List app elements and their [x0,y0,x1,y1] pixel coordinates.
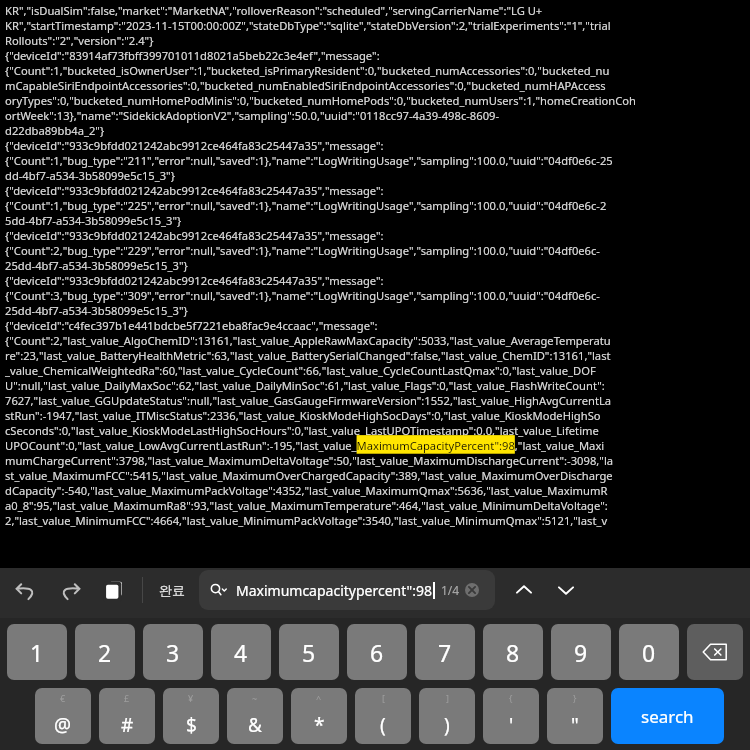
staticText: 25dd-4bf7-a534-3b58099e5c15_3"} [5,303,748,318]
button[interactable]: 완료 [149,568,195,612]
staticText: { [509,692,513,704]
staticText: 25dd-4bf7-a534-3b58099e5c15_3"} [5,258,748,273]
staticText: 7627,"last_value_GGUpdateStatus":null,"l… [5,393,748,408]
staticText: {"Count":1,"bug_type":"211","error":null… [5,153,748,168]
staticText: } [573,692,577,704]
button[interactable]: [ [355,688,411,744]
staticText: Rollouts":"2","version":"2.4"} [5,33,748,48]
staticText: {"deviceId":"933c9bfdd021242abc9912ce464… [5,273,748,288]
staticText: {"Count":3,"bug_type":"309","error":null… [5,288,748,303]
staticText: stRun":-1947,"last_value_ITMiscStatus":2… [5,408,748,423]
staticText: 9 [574,637,588,668]
button[interactable]: € [35,688,91,744]
button[interactable]: search [611,688,724,744]
staticText: mCapableSiriEndpointAccessories":0,"buck… [5,78,748,93]
staticText: d22dba89bb4a_2"} [5,123,748,138]
button[interactable]: Previous match [503,569,545,611]
button[interactable]: ^ [291,688,347,744]
staticText: ) [444,712,450,738]
button[interactable]: Backspace [687,624,743,680]
staticText: 2,"last_value_MinimumFCC":4664,"last_val… [5,513,748,528]
button[interactable]: 3 [143,624,203,680]
staticText: ( [380,712,386,738]
staticText: _value_ChemicalWeightedRa":60,"last_valu… [5,363,748,378]
staticText: ' [509,712,514,738]
staticText: {"Count":1,"bucketed_isOwnerUser":1,"buc… [5,63,748,78]
button[interactable]: { [483,688,539,744]
button[interactable]: Maximumcapacitypercent":98 [199,570,495,610]
staticText: 1 [30,637,44,668]
button[interactable]: ] [419,688,475,744]
button[interactable]: 1 [7,624,67,680]
staticText: {"deviceId":"933c9bfdd021242abc9912ce464… [5,138,748,153]
staticText: £ [124,692,130,704]
button[interactable]: Redo [48,568,92,612]
button[interactable]: 0 [619,624,679,680]
staticText: cSeconds":0,"last_value_KioskModeLastHig… [5,423,748,438]
staticText: {"deviceId":"933c9bfdd021242abc9912ce464… [5,183,748,198]
staticText: € [60,692,66,704]
staticText: $ [186,712,197,738]
staticText: ~ [252,692,258,704]
staticText: mumChargeCurrent":3798,"last_value_Maxim… [5,453,748,468]
staticText: 8 [506,637,520,668]
button[interactable]: Next match [545,569,587,611]
button[interactable]: 4 [211,624,271,680]
staticText: 4 [234,637,248,668]
staticText: UPOCount":0,"last_value_LowAvgCurrentLas… [5,438,748,453]
staticText: oryTypes":0,"bucketed_numHomePodMinis":0… [5,93,748,108]
button[interactable]: 2 [75,624,135,680]
staticText: ortWeek":13},"name":"SidekickAdoptionV2"… [5,108,748,123]
staticText: ¥ [188,692,194,704]
staticText: 5 [302,637,316,668]
button[interactable]: 5 [279,624,339,680]
staticText: 0 [642,637,656,668]
button[interactable]: ¥ [163,688,219,744]
button[interactable]: Copy [92,568,136,612]
button[interactable]: Undo [4,568,48,612]
staticText: 6 [370,637,384,668]
staticText: 5dd-4bf7-a534-3b58099e5c15_3"} [5,213,748,228]
staticText: & [248,712,262,738]
staticText: search [641,705,694,728]
staticText: " [571,712,579,738]
staticText: re":23,"last_value_BatteryHealthMetric":… [5,348,748,363]
button[interactable]: 9 [551,624,611,680]
button[interactable]: } [547,688,603,744]
staticText: a0_8":95,"last_value_MaximumRa8":93,"las… [5,498,748,513]
staticText: ] [446,692,449,704]
staticText: 2 [98,637,112,668]
button[interactable]: ~ [227,688,283,744]
button[interactable]: £ [99,688,155,744]
button[interactable]: 8 [483,624,543,680]
button[interactable]: 6 [347,624,407,680]
staticText: 완료 [159,582,185,598]
staticText: {"Count":1,"bug_type":"225","error":null… [5,198,748,213]
staticText: [ [382,692,385,704]
staticText: dCapacity":-540,"last_value_MaximumPackV… [5,483,748,498]
button[interactable]: 7 [415,624,475,680]
staticText: KR","startTimestamp":"2023-11-15T00:00:0… [5,18,748,33]
staticText: Maximumcapacitypercent":98 [236,581,433,600]
staticText: 7 [438,637,452,668]
staticText: 3 [166,637,180,668]
staticText: @ [54,712,72,738]
button[interactable]: Clear search [465,583,479,597]
staticText: st_value_MaximumFCC":5415,"last_value_Ma… [5,468,748,483]
staticText: {"Count":2,"bug_type":"229","error":null… [5,243,748,258]
staticText: # [121,712,134,738]
staticText: dd-4bf7-a534-3b58099e5c15_3"} [5,168,748,183]
staticText: {"deviceId":"83914af73fbff399701011d8021… [5,48,748,63]
staticText: {"deviceId":"933c9bfdd021242abc9912ce464… [5,228,748,243]
staticText: {"Count":2,"last_value_AlgoChemID":13161… [5,333,748,348]
staticText: * [314,712,325,738]
staticText: ^ [316,692,322,704]
staticText: {"deviceId":"c4fec397b1e441bdcbe5f7221eb… [5,318,748,333]
staticText: KR","isDualSim":false,"market":"MarketNA… [5,3,748,18]
staticText: 1/4 [441,582,460,598]
staticText: U":null,"last_value_DailyMaxSoc":62,"las… [5,378,748,393]
